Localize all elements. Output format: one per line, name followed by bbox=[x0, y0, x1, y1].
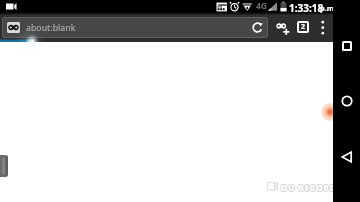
staticText: DU RECORDER bbox=[280, 181, 348, 193]
staticText: DU RECORDER bbox=[282, 181, 350, 193]
button[interactable]: New incognito tab bbox=[271, 18, 293, 40]
staticText: DU RECORDER bbox=[281, 181, 349, 193]
button[interactable]: Back bbox=[337, 147, 357, 167]
button[interactable]: Recents bbox=[337, 36, 357, 56]
button[interactable]: Tabs bbox=[297, 21, 309, 33]
staticText: 1:33:18 bbox=[289, 1, 324, 15]
button[interactable]: Open drawer bbox=[0, 155, 8, 177]
button[interactable]: about:blank bbox=[2, 17, 268, 38]
staticText: about:blank bbox=[26, 22, 76, 34]
button[interactable]: More options bbox=[316, 19, 330, 39]
staticText: DU RECORDER bbox=[281, 180, 349, 192]
staticText: 4G bbox=[256, 0, 268, 12]
staticText: DU RECORDER bbox=[281, 182, 349, 194]
staticText: p.m. bbox=[320, 3, 336, 19]
button[interactable]: Home bbox=[337, 91, 357, 111]
button[interactable]: Reload bbox=[246, 17, 268, 38]
staticText: 2 bbox=[301, 22, 306, 32]
